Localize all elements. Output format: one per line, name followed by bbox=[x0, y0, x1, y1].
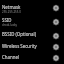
staticText: Wireless Security bbox=[2, 43, 37, 49]
button[interactable]: Settings bbox=[52, 4, 60, 12]
staticText: Channel bbox=[2, 54, 19, 60]
staticText: SSID bbox=[2, 17, 12, 23]
staticText: BSSID (Optional) bbox=[2, 31, 36, 37]
button[interactable]: BSSID (Optional) bbox=[0, 28, 64, 40]
button[interactable]: Settings bbox=[52, 18, 60, 26]
button[interactable]: Settings bbox=[52, 32, 60, 40]
button[interactable]: SSID bbox=[0, 14, 64, 28]
button[interactable]: Netmask bbox=[0, 0, 64, 14]
staticText: droid-lucky bbox=[2, 23, 18, 27]
button[interactable]: Settings bbox=[52, 54, 60, 62]
button[interactable]: Wireless Security bbox=[0, 40, 64, 51]
staticText: Netmask bbox=[2, 4, 21, 10]
button[interactable]: Settings bbox=[52, 43, 60, 51]
button[interactable]: Channel bbox=[0, 51, 64, 62]
staticText: 255.255.255.0 bbox=[2, 10, 21, 14]
